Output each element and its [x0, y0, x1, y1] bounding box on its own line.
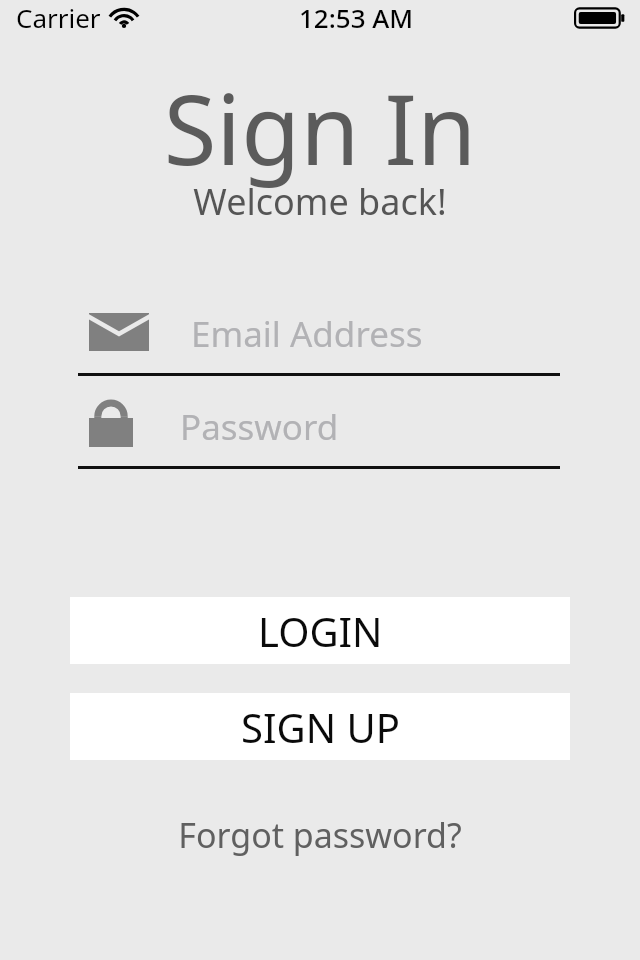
staticText: SIGN UP: [241, 700, 400, 754]
staticText: Sign In: [0, 62, 640, 193]
staticText: Email Address: [191, 310, 423, 358]
button[interactable]: Email Address input: [0, 300, 640, 378]
staticText: Welcome back!: [0, 177, 640, 226]
button[interactable]: Password input: [0, 393, 640, 471]
staticText: Forgot password?: [0, 812, 640, 858]
button[interactable]: Forgot password?: [0, 808, 640, 862]
button[interactable]: LOGIN: [70, 597, 570, 664]
staticText: 12:53 AM: [299, 0, 414, 35]
button[interactable]: SIGN UP: [70, 693, 570, 760]
staticText: Password: [180, 403, 339, 451]
staticText: Carrier: [16, 0, 101, 35]
staticText: LOGIN: [258, 604, 383, 658]
